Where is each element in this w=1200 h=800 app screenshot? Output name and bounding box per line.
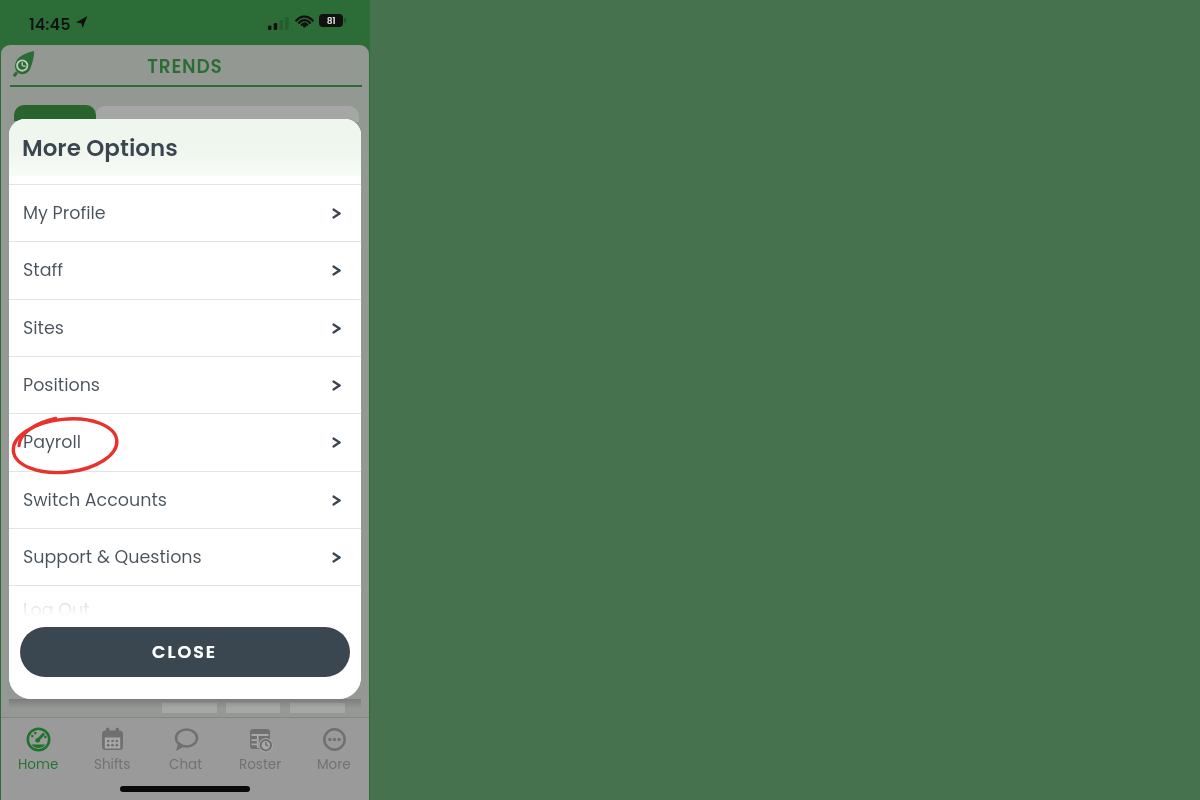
staticText: Shifts: [94, 755, 131, 774]
staticText: Log Out: [23, 598, 90, 623]
staticText: 14:45: [29, 13, 71, 35]
staticText: TRENDS: [1, 54, 369, 80]
staticText: Positions: [23, 373, 332, 398]
staticText: Staff: [23, 258, 332, 283]
staticText: 81: [327, 15, 336, 27]
button[interactable]: Switch Accounts: [9, 472, 361, 528]
button[interactable]: Sites: [9, 300, 361, 356]
staticText: More Options: [22, 132, 178, 164]
staticText: More: [317, 755, 351, 774]
button[interactable]: Roster: [228, 727, 292, 774]
staticText: Roster: [239, 755, 282, 774]
staticText: Home: [18, 755, 59, 774]
button[interactable]: Payroll: [9, 414, 361, 470]
staticText: Switch Accounts: [23, 488, 332, 513]
staticText: Support & Questions: [23, 545, 332, 570]
button[interactable]: Support & Questions: [9, 529, 361, 585]
button[interactable]: My Profile: [9, 185, 361, 241]
staticText: My Profile: [23, 201, 332, 226]
button[interactable]: Home: [6, 727, 70, 774]
button[interactable]: Staff: [9, 242, 361, 298]
staticText: CLOSE: [152, 640, 218, 665]
staticText: Chat: [169, 755, 203, 774]
button[interactable]: Positions: [9, 357, 361, 413]
staticText: Payroll: [23, 430, 332, 455]
staticText: Sites: [23, 316, 332, 341]
button[interactable]: CLOSE: [20, 627, 350, 677]
button[interactable]: Chat: [154, 727, 218, 774]
button[interactable]: Shifts: [80, 727, 144, 774]
button[interactable]: More: [302, 727, 366, 774]
